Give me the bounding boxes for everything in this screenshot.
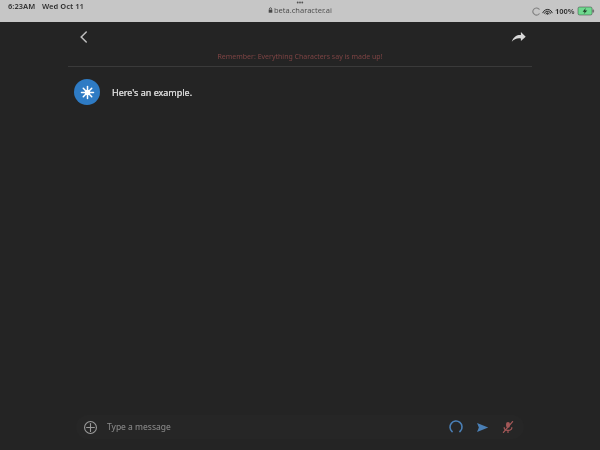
staticText: 6:23AM — [8, 1, 36, 11]
button[interactable]: Microphone muted — [498, 417, 518, 437]
staticText: Type a message — [107, 421, 171, 433]
staticText: Here's an example. — [112, 86, 193, 98]
button[interactable]: Regenerate — [446, 417, 466, 437]
staticText: Wed Oct 11 — [42, 1, 84, 11]
button[interactable]: Add attachment — [76, 415, 524, 439]
button[interactable]: Add attachment — [80, 417, 100, 437]
staticText: beta.character.ai — [274, 5, 332, 15]
button[interactable]: Share — [504, 23, 532, 51]
staticText: 100% — [555, 6, 575, 16]
button[interactable]: Back — [70, 23, 98, 51]
button[interactable]: Send — [472, 417, 492, 437]
staticText: Remember: Everything Characters say is m… — [217, 52, 383, 62]
